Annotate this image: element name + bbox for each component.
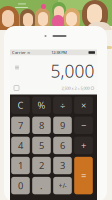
button[interactable]: %: [32, 96, 51, 114]
staticText: 2: [39, 159, 44, 172]
staticText: 9: [60, 119, 65, 131]
staticText: 4: [18, 139, 23, 152]
button[interactable]: 5: [32, 137, 51, 154]
staticText: 6: [60, 139, 65, 152]
staticText: C: [17, 99, 23, 111]
staticText: .: [40, 179, 43, 192]
button[interactable]: History: [13, 63, 21, 71]
staticText: 1: [18, 159, 23, 172]
button[interactable]: 2: [32, 157, 51, 174]
staticText: Carrier: [12, 50, 26, 55]
staticText: 5,000: [50, 59, 94, 82]
staticText: −: [81, 119, 86, 131]
button[interactable]: ×: [74, 96, 93, 114]
button[interactable]: C: [11, 96, 30, 114]
button[interactable]: −: [74, 117, 93, 134]
staticText: ≈: [27, 50, 30, 55]
button[interactable]: 3: [53, 157, 72, 174]
staticText: +: [81, 139, 86, 152]
button[interactable]: 0: [11, 177, 30, 194]
button[interactable]: +: [74, 137, 93, 154]
staticText: 12:38 PM: [51, 50, 67, 55]
button[interactable]: +/-: [53, 177, 72, 194]
staticText: 3: [60, 159, 65, 172]
button[interactable]: 8: [32, 117, 51, 134]
button[interactable]: 6: [53, 137, 72, 154]
staticText: =: [81, 169, 86, 182]
staticText: +/-: [58, 181, 66, 190]
staticText: 7: [18, 119, 23, 131]
staticText: 5: [39, 139, 44, 152]
button[interactable]: Memory: [12, 83, 21, 92]
staticText: 2,500 x 2 = 5,000: [61, 85, 89, 91]
button[interactable]: =: [74, 157, 93, 194]
button[interactable]: .: [32, 177, 51, 194]
staticText: ÷: [60, 99, 65, 111]
staticText: 0: [18, 179, 23, 192]
button[interactable]: 7: [11, 117, 30, 134]
staticText: ×: [81, 99, 86, 111]
staticText: 8: [39, 119, 44, 131]
button[interactable]: 4: [11, 137, 30, 154]
button[interactable]: 9: [53, 117, 72, 134]
button[interactable]: 1: [11, 157, 30, 174]
button[interactable]: ÷: [53, 96, 72, 114]
staticText: %: [37, 99, 45, 111]
